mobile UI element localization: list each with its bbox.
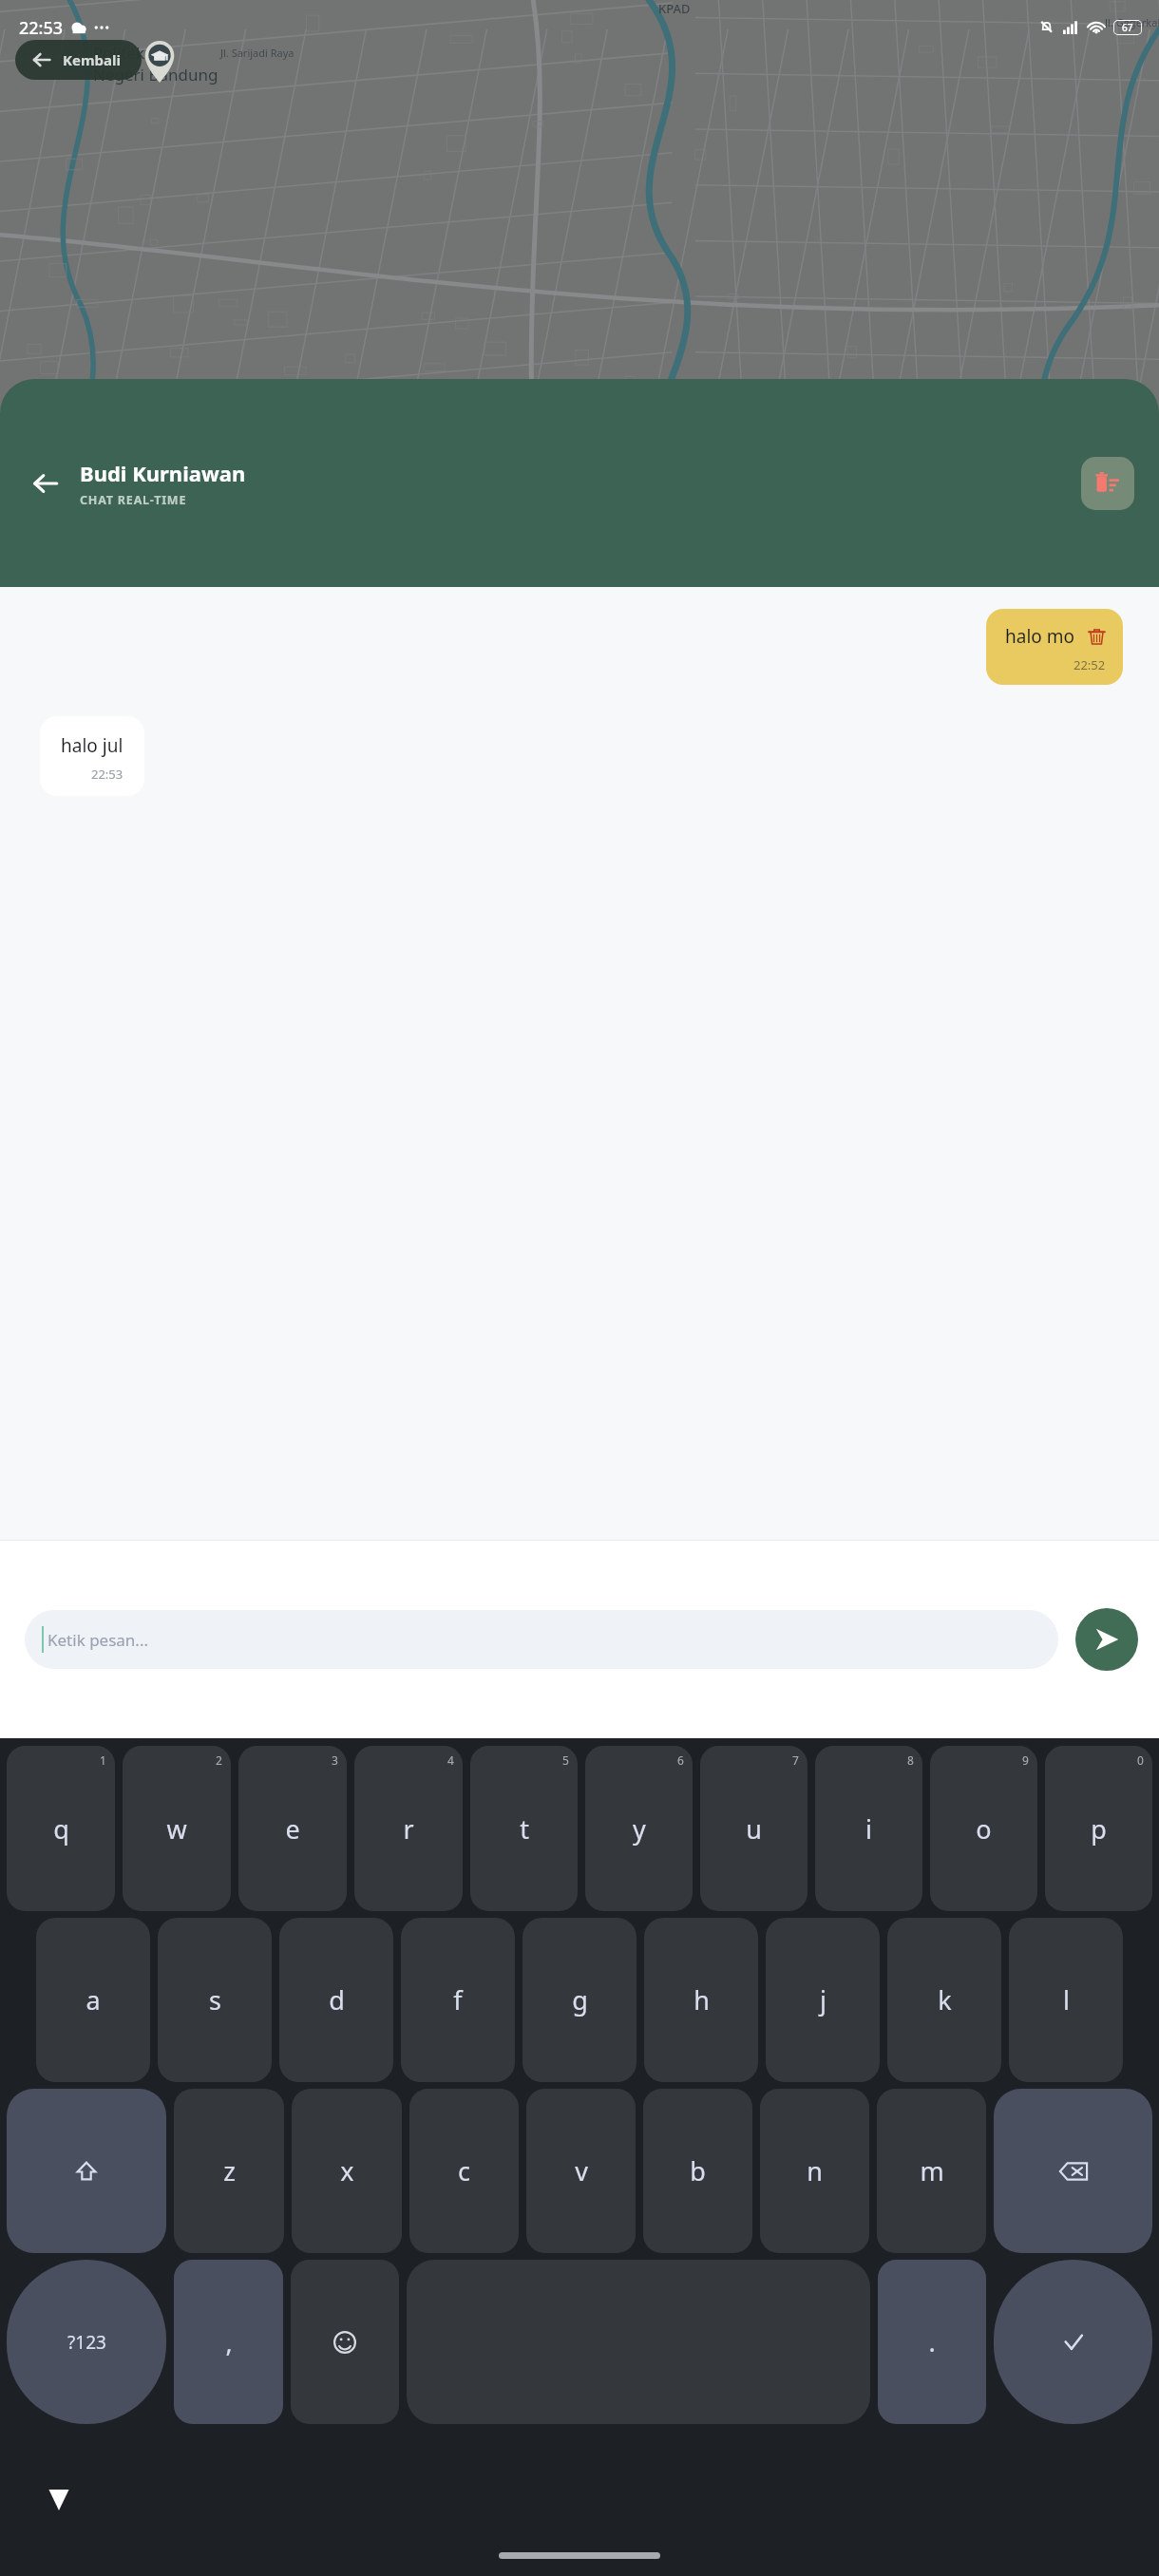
staticText: o	[976, 1811, 992, 1847]
button[interactable]: x	[292, 2089, 402, 2253]
button[interactable]: halo mo	[986, 609, 1123, 685]
staticText: 0	[1137, 1752, 1144, 1768]
button[interactable]: .	[878, 2260, 986, 2424]
staticText: 4	[447, 1752, 454, 1768]
button[interactable]: o	[930, 1746, 1037, 1911]
staticText: a	[85, 1982, 101, 2017]
staticText: halo jul	[61, 733, 123, 758]
button[interactable]: a	[36, 1918, 150, 2082]
button[interactable]: n	[760, 2089, 869, 2253]
staticText: f	[453, 1982, 463, 2017]
button[interactable]: r	[354, 1746, 463, 1911]
staticText: c	[458, 2153, 470, 2188]
button[interactable]: v	[526, 2089, 636, 2253]
button[interactable]: Backspace	[994, 2089, 1152, 2253]
staticText: x	[340, 2153, 354, 2188]
staticText: Jl. Gegerkal	[1105, 15, 1159, 29]
staticText: 22:52	[1073, 656, 1106, 673]
button[interactable]: Back	[25, 463, 66, 504]
staticText: g	[572, 1982, 588, 2017]
button[interactable]: j	[766, 1918, 880, 2082]
staticText: KPAD	[658, 0, 691, 17]
button[interactable]: ,	[174, 2260, 283, 2424]
staticText: w	[166, 1811, 187, 1847]
staticText: ,	[225, 2324, 233, 2359]
button[interactable]: Kembali	[15, 40, 142, 80]
staticText: h	[693, 1982, 710, 2017]
staticText: 22:53	[19, 16, 64, 40]
staticText: 22:53	[91, 766, 123, 783]
button[interactable]: Shift	[7, 2089, 166, 2253]
staticText: y	[633, 1811, 646, 1847]
staticText: d	[329, 1982, 345, 2017]
staticText: t	[520, 1811, 529, 1847]
staticText: u	[746, 1811, 762, 1847]
staticText: 9	[1022, 1752, 1029, 1768]
staticText: 7	[792, 1752, 799, 1768]
button[interactable]: y	[585, 1746, 693, 1911]
button[interactable]: q	[7, 1746, 115, 1911]
staticText: i	[865, 1811, 872, 1847]
staticText: 8	[907, 1752, 914, 1768]
staticText: 2	[216, 1752, 222, 1768]
staticText: 3	[332, 1752, 338, 1768]
staticText: b	[690, 2153, 706, 2188]
staticText: e	[285, 1811, 300, 1847]
button[interactable]: b	[643, 2089, 752, 2253]
button[interactable]: h	[644, 1918, 758, 2082]
button[interactable]: u	[700, 1746, 807, 1911]
button[interactable]: halo jul	[40, 716, 144, 796]
staticText: 6	[677, 1752, 684, 1768]
button[interactable]: Ketik pesan...	[25, 1610, 1058, 1669]
staticText: ?123	[67, 2330, 106, 2355]
staticText: n	[807, 2153, 823, 2188]
button[interactable]: k	[887, 1918, 1001, 2082]
button[interactable]: d	[279, 1918, 393, 2082]
staticText: s	[209, 1982, 221, 2017]
staticText: 67	[1122, 21, 1133, 34]
staticText: Politeknik Negeri Bandung	[93, 42, 218, 85]
staticText: p	[1091, 1811, 1107, 1847]
button[interactable]: l	[1009, 1918, 1123, 2082]
button[interactable]: s	[158, 1918, 272, 2082]
button[interactable]: i	[815, 1746, 922, 1911]
staticText: Budi Kurniawan	[80, 459, 246, 487]
button[interactable]: Enter	[994, 2260, 1152, 2424]
staticText: Kembali	[63, 50, 121, 69]
staticText: v	[575, 2153, 588, 2188]
staticText: l	[1063, 1982, 1070, 2017]
button[interactable]: Hide keyboard	[47, 2490, 70, 2510]
button[interactable]: m	[877, 2089, 986, 2253]
staticText: Jl. Sarijadi Raya	[220, 46, 294, 60]
staticText: halo mo	[1005, 624, 1074, 649]
staticText: r	[403, 1811, 414, 1847]
staticText: k	[938, 1982, 952, 2017]
button[interactable]: f	[401, 1918, 515, 2082]
button[interactable]: t	[470, 1746, 578, 1911]
button[interactable]: c	[409, 2089, 519, 2253]
button[interactable]: z	[174, 2089, 284, 2253]
staticText: z	[223, 2153, 236, 2188]
button[interactable]: Emoji	[291, 2260, 399, 2424]
staticText: j	[820, 1982, 826, 2017]
staticText: Ketik pesan...	[47, 1629, 149, 1651]
staticText: CHAT REAL-TIME	[80, 492, 187, 508]
staticText: 1	[100, 1752, 106, 1768]
staticText: m	[920, 2153, 944, 2188]
button[interactable]: e	[238, 1746, 347, 1911]
button[interactable]: Delete chat	[1081, 457, 1134, 510]
button[interactable]: Send	[1075, 1608, 1138, 1671]
button[interactable]: w	[123, 1746, 231, 1911]
button[interactable]: ?123	[7, 2260, 166, 2424]
button[interactable]: p	[1045, 1746, 1152, 1911]
staticText: .	[928, 2324, 936, 2359]
staticText: 5	[562, 1752, 569, 1768]
staticText: q	[53, 1811, 69, 1847]
button[interactable]: g	[522, 1918, 636, 2082]
